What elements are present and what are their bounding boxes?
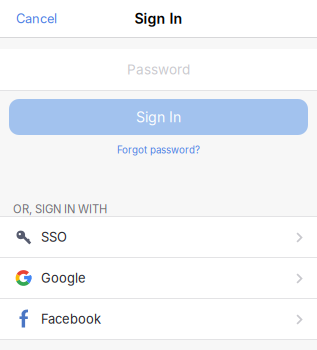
staticText: Sign In [134,10,182,27]
staticText: Password [127,61,190,78]
staticText: Sign In [136,108,181,125]
button[interactable]: SSO [0,217,317,257]
staticText: Facebook [41,311,101,327]
staticText: Google [41,270,86,286]
button[interactable]: Forgot password? [109,138,208,161]
staticText: Cancel [16,11,57,26]
button[interactable]: Sign In [9,99,308,135]
staticText: Forgot password? [117,144,200,156]
staticText: OR, SIGN IN WITH [13,202,107,216]
staticText: SSO [41,229,67,245]
button[interactable]: Facebook [0,299,317,339]
button[interactable]: Google [0,258,317,298]
button[interactable]: Cancel [0,0,67,36]
